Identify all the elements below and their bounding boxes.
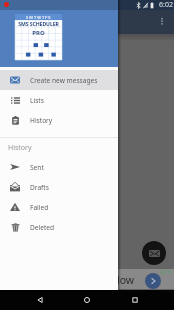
button[interactable]: Deleted: [0, 217, 118, 237]
staticText: Failed: [30, 203, 49, 212]
button[interactable]: History: [0, 110, 118, 130]
button[interactable]: New message: [142, 241, 166, 265]
staticText: Sent: [30, 163, 44, 172]
button[interactable]: Home: [79, 290, 95, 310]
staticText: 6:02: [159, 0, 173, 10]
staticText: Create new messages: [30, 76, 98, 85]
staticText: Drafts: [30, 183, 49, 192]
button[interactable]: Home: [79, 290, 95, 310]
button[interactable]: Sent: [0, 157, 118, 177]
button[interactable]: More options: [152, 12, 172, 32]
staticText: low: [117, 273, 135, 287]
staticText: S M T W T F S: [26, 15, 51, 20]
button[interactable]: Recents: [127, 290, 143, 310]
button[interactable]: Open ad: [145, 273, 161, 289]
staticText: Lists: [30, 96, 44, 105]
button[interactable]: Recents: [127, 290, 143, 310]
staticText: PRO: [15, 29, 62, 37]
staticText: SMS SCHEDULER: [15, 20, 62, 27]
button[interactable]: Failed: [0, 197, 118, 217]
staticText: Deleted: [30, 223, 55, 232]
button[interactable]: Drafts: [0, 177, 118, 197]
button[interactable]: Create new messages: [0, 70, 118, 90]
staticText: History: [8, 143, 32, 153]
button[interactable]: Lists: [0, 90, 118, 110]
button[interactable]: Back: [32, 290, 48, 310]
staticText: History: [30, 116, 53, 125]
button[interactable]: Back: [32, 290, 48, 310]
